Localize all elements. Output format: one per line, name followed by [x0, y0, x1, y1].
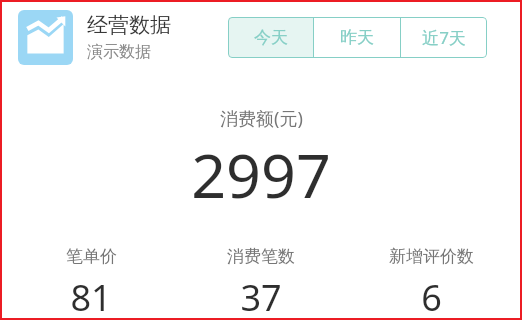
staticText: 今天	[254, 27, 288, 48]
staticText: 6	[421, 273, 442, 318]
staticText: 消费额(元)	[220, 106, 303, 131]
button[interactable]: 近7天	[401, 17, 487, 58]
button[interactable]: 昨天	[314, 17, 400, 58]
other: 经营数据图标	[18, 10, 73, 65]
staticText: 经营数据	[87, 12, 171, 38]
staticText: 昨天	[340, 27, 374, 48]
button[interactable]: 笔单价	[6, 246, 176, 318]
button[interactable]: 新增评价数	[346, 246, 516, 318]
staticText: 近7天	[422, 26, 466, 49]
staticText: 演示数据	[87, 42, 151, 62]
staticText: 消费笔数	[227, 246, 295, 267]
button[interactable]: 消费笔数	[176, 246, 346, 318]
staticText: 新增评价数	[389, 246, 474, 267]
button[interactable]: 今天	[228, 17, 313, 58]
staticText: 2997	[191, 133, 331, 216]
staticText: 笔单价	[66, 246, 117, 267]
staticText: 37	[240, 273, 282, 318]
staticText: 81	[70, 273, 112, 318]
